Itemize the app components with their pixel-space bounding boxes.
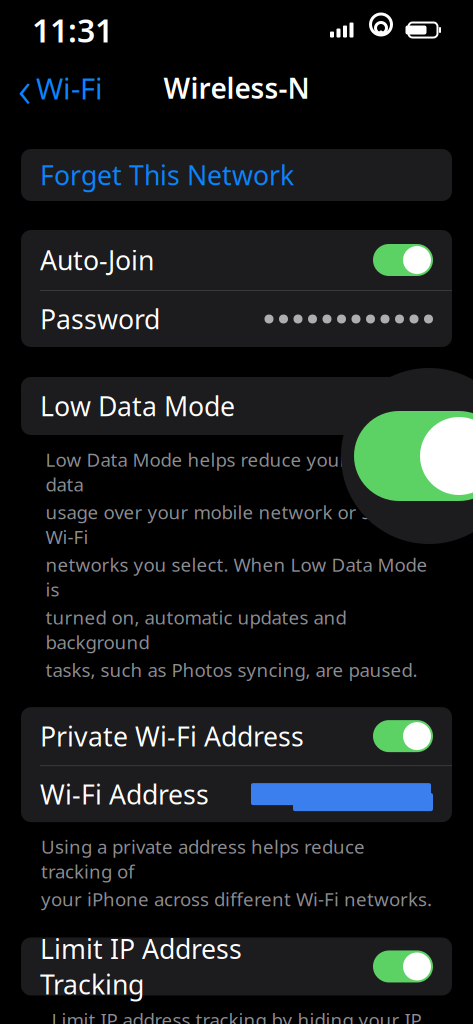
staticText: Auto-Join [40,242,154,278]
button[interactable]: ‹ [6,48,115,128]
button[interactable]: Limit IP Address Tracking [21,937,452,995]
staticText: turned on, automatic updates and backgro… [45,605,346,654]
staticText: tasks, such as Photos syncing, are pause… [45,657,417,682]
button[interactable]: Private Wi-Fi Address [21,707,452,765]
staticText: Forget This Network [40,157,294,193]
staticText: Wi-Fi Address [40,776,209,812]
button[interactable]: Low Data Mode [21,377,452,435]
staticText: usage over your mobile network or specif… [45,500,426,549]
staticText: Password [40,301,160,337]
staticText: networks you select. When Low Data Mode … [45,552,427,602]
button[interactable]: Auto-Join [21,230,452,290]
staticText: Limit IP Address Tracking [40,931,242,1002]
button[interactable]: Forget This Network [21,149,452,201]
button[interactable]: Password [21,291,452,347]
staticText: 11:31 [32,9,113,51]
staticText: Low Data Mode helps reduce your iPhone d… [45,447,414,497]
staticText: Private Wi-Fi Address [40,718,304,754]
staticText: Low Data Mode [40,388,235,424]
staticText: your iPhone across different Wi-Fi netwo… [41,887,432,911]
staticText: Using a private address helps reduce tra… [41,834,365,884]
staticText: Limit IP address tracking by hiding your… [51,1007,421,1024]
button[interactable]: Wi-Fi Address [21,766,452,822]
staticText: Wireless-N [163,69,309,107]
staticText: ‹ [18,54,31,122]
staticText: Wi-Fi [36,68,103,107]
